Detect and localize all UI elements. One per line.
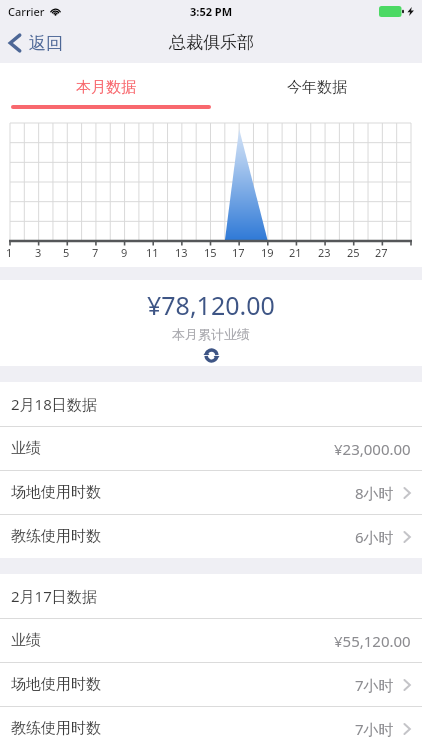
staticText: 19 [261,245,274,260]
button[interactable]: 教练使用时数 [0,707,422,750]
staticText: 5 [63,245,70,260]
staticText: 返回 [29,33,63,54]
button[interactable]: 刷新 [199,345,223,366]
staticText: 13 [175,245,188,260]
staticText: 17 [232,245,245,260]
staticText: 21 [289,245,302,260]
staticText: 3:52 PM [190,4,233,19]
button[interactable]: 场地使用时数 [0,471,422,514]
staticText: 6小时 [355,527,394,547]
staticText: 15 [204,245,217,260]
staticText: 1 [6,245,13,260]
staticText: 2月18日数据 [11,394,97,414]
staticText: 本月累计业绩 [172,326,250,342]
button[interactable]: 教练使用时数 [0,515,422,558]
staticText: 教练使用时数 [11,527,101,546]
staticText: 7小时 [355,719,394,739]
staticText: Carrier [8,4,45,19]
staticText: 场地使用时数 [11,675,101,694]
staticText: 11 [146,245,159,260]
button[interactable]: 业绩 [0,427,422,470]
staticText: 3 [35,245,42,260]
button[interactable]: 场地使用时数 [0,663,422,706]
staticText: ¥78,120.00 [147,288,275,322]
staticText: 7小时 [355,675,394,695]
button[interactable]: 返回 [0,28,77,58]
staticText: 业绩 [11,631,41,650]
staticText: 教练使用时数 [11,719,101,738]
staticText: 7 [92,245,99,260]
staticText: 今年数据 [287,78,347,97]
button[interactable]: 今年数据 [211,63,422,111]
staticText: 场地使用时数 [11,483,101,502]
button[interactable]: 业绩 [0,619,422,662]
staticText: 本月数据 [76,78,136,97]
staticText: 25 [347,245,360,260]
staticText: 9 [121,245,128,260]
button[interactable]: 本月数据 [0,63,211,111]
staticText: 2月17日数据 [11,586,97,606]
staticText: ¥55,120.00 [334,631,411,651]
staticText: 总裁俱乐部 [169,32,254,53]
staticText: 27 [375,245,388,260]
staticText: 8小时 [355,483,394,503]
staticText: 23 [318,245,331,260]
staticText: 业绩 [11,439,41,458]
staticText: ¥23,000.00 [334,439,411,459]
